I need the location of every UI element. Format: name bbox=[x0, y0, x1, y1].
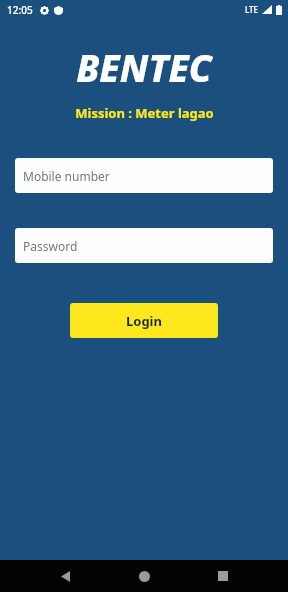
staticText: Mobile number bbox=[23, 168, 110, 184]
button[interactable]: Login bbox=[70, 303, 218, 338]
button[interactable]: Recent apps bbox=[208, 561, 238, 591]
button[interactable]: Back bbox=[50, 561, 80, 591]
staticText: Password bbox=[23, 238, 78, 254]
button[interactable]: Home bbox=[129, 561, 159, 591]
button[interactable]: Password bbox=[15, 228, 273, 263]
staticText: LTE bbox=[245, 4, 259, 15]
staticText: 12:05 bbox=[7, 3, 33, 17]
staticText: BENTEC bbox=[76, 42, 212, 92]
staticText: Login bbox=[126, 312, 162, 330]
staticText: Mission : Meter lagao bbox=[75, 104, 214, 122]
button[interactable]: Mobile number bbox=[15, 158, 273, 193]
